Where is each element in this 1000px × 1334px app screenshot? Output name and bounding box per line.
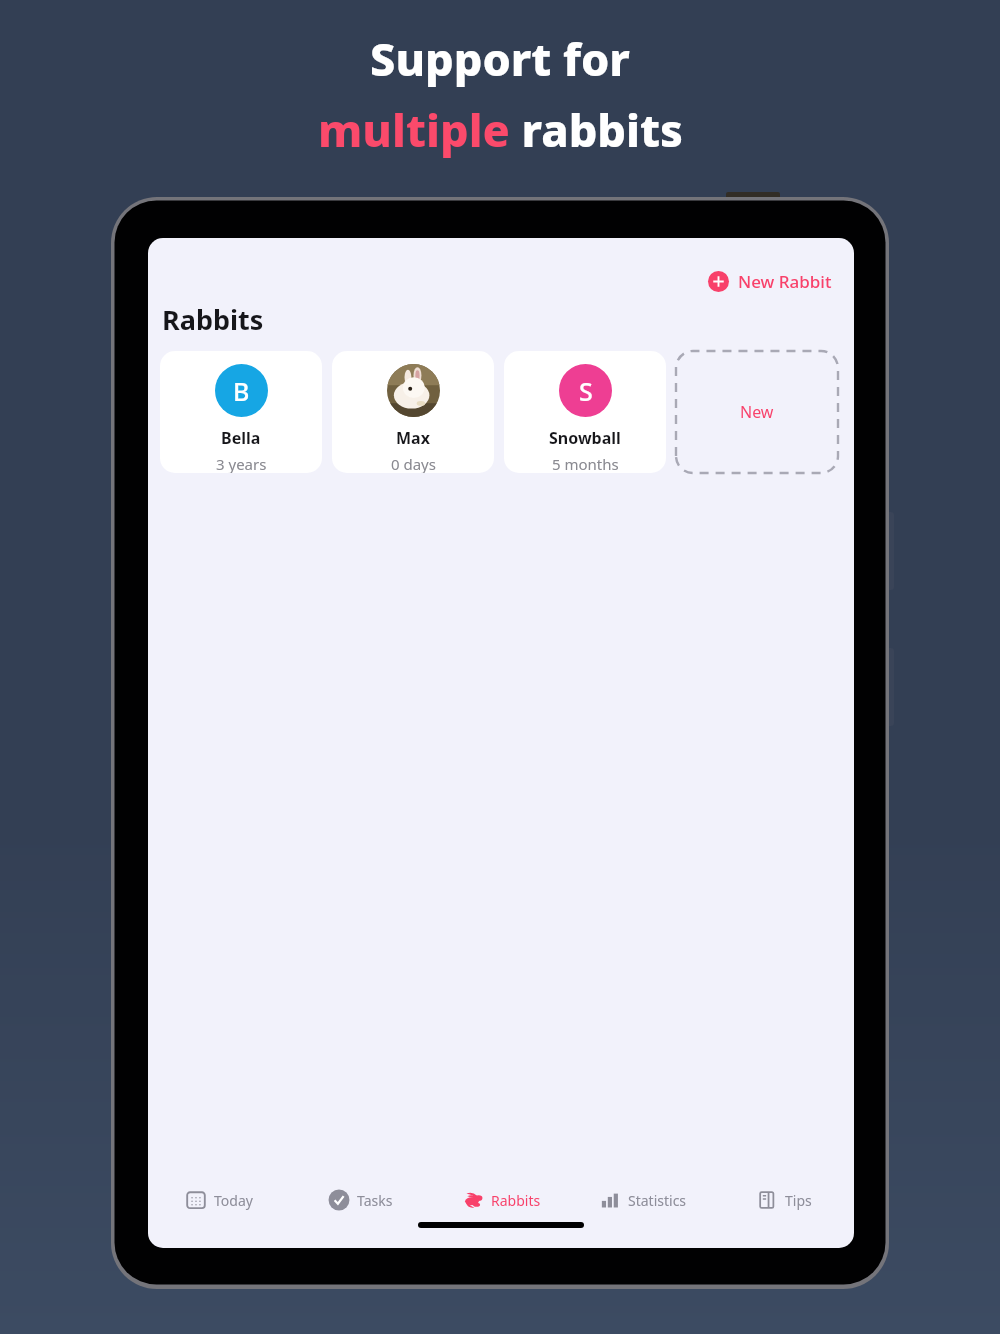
staticText: 5 months	[552, 454, 619, 473]
button[interactable]: Tasks	[290, 1183, 431, 1217]
staticText: multiple rabbits	[318, 99, 683, 160]
button[interactable]: Tips	[713, 1183, 854, 1217]
staticText: New	[740, 401, 774, 423]
staticText: Rabbits	[162, 301, 264, 338]
button[interactable]: B	[160, 351, 322, 473]
button[interactable]: Rabbits	[431, 1183, 572, 1217]
staticText: Today	[214, 1191, 253, 1210]
button[interactable]: Max	[332, 351, 494, 473]
staticText: Statistics	[628, 1191, 687, 1210]
button[interactable]: S	[504, 351, 666, 473]
staticText: Tasks	[357, 1191, 393, 1210]
staticText: B	[233, 374, 250, 408]
button[interactable]: Statistics	[572, 1183, 713, 1217]
staticText: Max	[396, 427, 430, 449]
staticText: Rabbits	[491, 1191, 541, 1210]
staticText: 3 years	[216, 454, 267, 473]
staticText: Bella	[221, 427, 261, 449]
staticText: 0 days	[391, 454, 436, 473]
staticText: New Rabbit	[738, 270, 832, 293]
staticText: Snowball	[549, 427, 621, 449]
button[interactable]: New Rabbit	[702, 264, 838, 299]
staticText: S	[579, 374, 593, 408]
staticText: Tips	[785, 1191, 812, 1210]
button[interactable]: Add new rabbit	[676, 351, 838, 473]
button[interactable]: Today	[148, 1183, 290, 1217]
staticText: Support for	[370, 28, 630, 89]
